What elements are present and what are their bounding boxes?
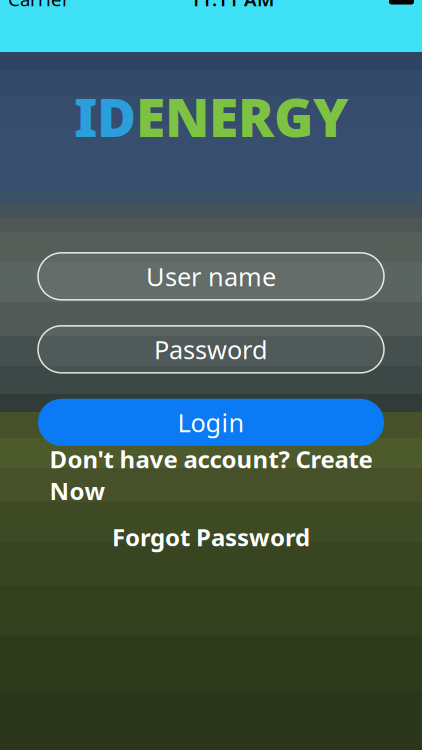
button[interactable]: User name: [38, 253, 384, 300]
staticText: Carrier: [8, 0, 70, 11]
button[interactable]: Don't have account? Create Now: [38, 460, 384, 490]
staticText: User name: [146, 259, 276, 293]
staticText: Forgot Password: [112, 521, 310, 553]
staticText: ENERGY: [136, 81, 348, 152]
staticText: Login: [177, 405, 244, 439]
staticText: 11:11 AM: [190, 0, 274, 11]
button[interactable]: Login: [38, 399, 384, 446]
staticText: Don't have account? Create Now: [49, 443, 372, 507]
staticText: Password: [154, 332, 268, 366]
button[interactable]: Forgot Password: [38, 522, 384, 552]
button[interactable]: Password: [38, 326, 384, 373]
staticText: ID: [74, 81, 136, 152]
